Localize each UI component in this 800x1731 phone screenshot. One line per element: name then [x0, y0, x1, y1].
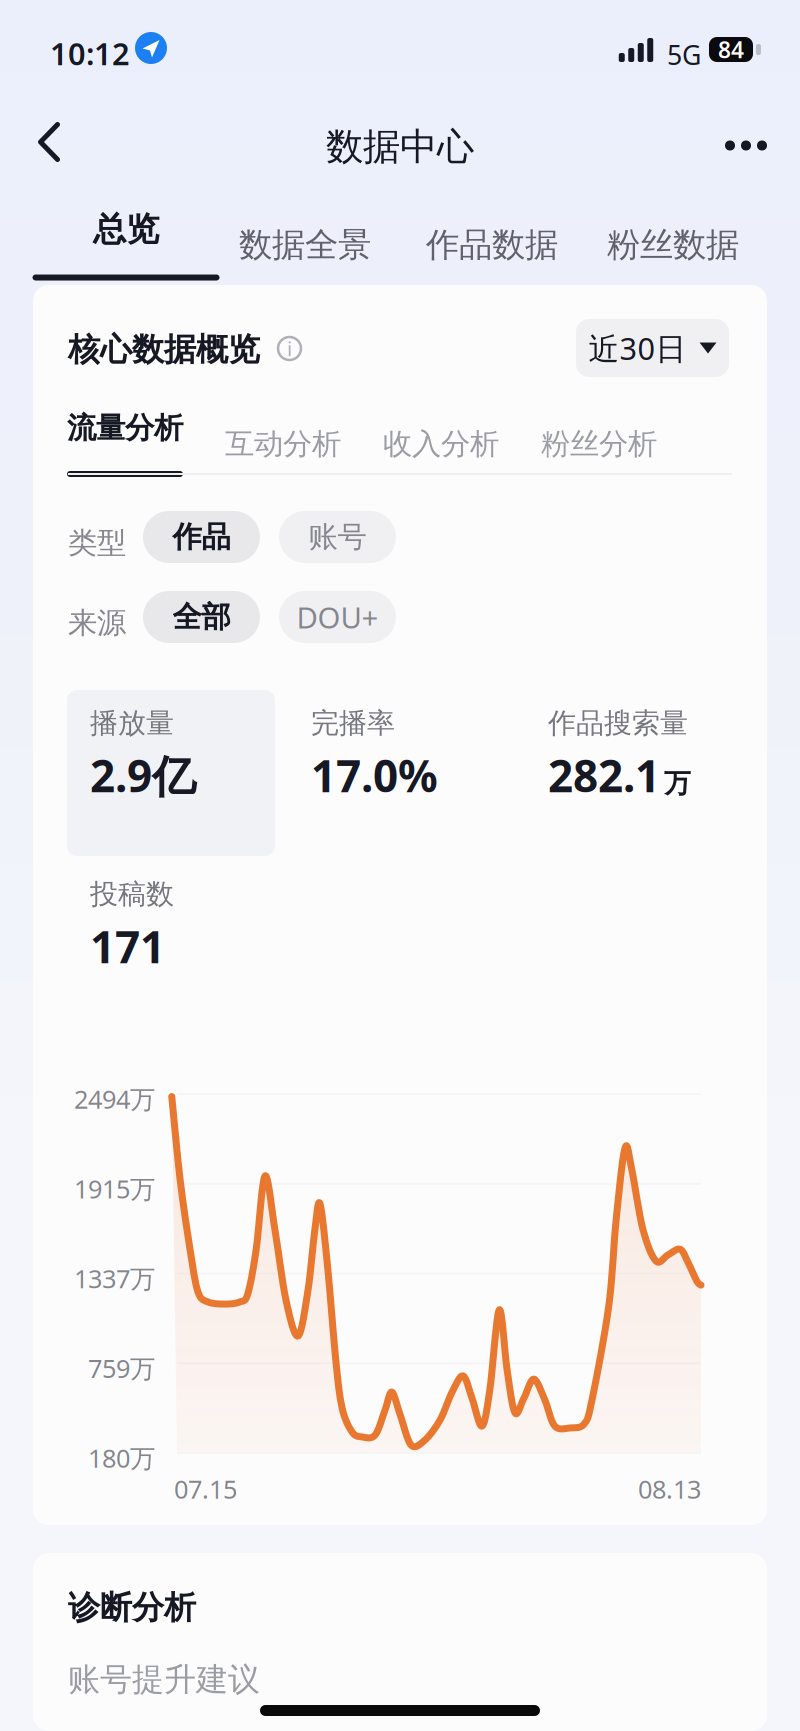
button[interactable]: DOU+ [279, 591, 396, 643]
staticText: 来源 [68, 605, 126, 641]
button[interactable]: 收入分析 [383, 406, 499, 482]
button[interactable]: 近30日 [576, 319, 729, 377]
staticText: 全部 [172, 599, 230, 635]
button[interactable]: 粉丝分析 [541, 406, 657, 482]
staticText: 核心数据概览 [68, 330, 260, 369]
button[interactable]: 作品数据 [397, 200, 587, 290]
staticText: 1337万 [74, 1261, 155, 1295]
staticText: 完播率 [311, 706, 395, 740]
button[interactable]: 互动分析 [225, 406, 341, 482]
staticText: 1915万 [74, 1172, 155, 1205]
staticText: 互动分析 [225, 426, 341, 462]
button[interactable]: 账号 [279, 511, 396, 563]
staticText: 2.9亿 [90, 746, 196, 804]
staticText: 180万 [88, 1441, 155, 1475]
staticText: 17.0% [311, 746, 438, 804]
staticText: 粉丝数据 [607, 224, 739, 265]
button[interactable]: 粉丝数据 [578, 200, 768, 290]
button[interactable]: 流量分析 [67, 406, 183, 482]
staticText: 数据中心 [326, 124, 474, 170]
staticText: 07.15 [174, 1472, 237, 1506]
staticText: 类型 [68, 525, 126, 561]
button[interactable]: Back [10, 96, 88, 188]
staticText: 5G [667, 37, 701, 72]
staticText: 数据全景 [239, 224, 371, 265]
staticText: 作品 [172, 519, 230, 555]
staticText: 诊断分析 [68, 1588, 196, 1627]
staticText: 171 [90, 917, 165, 975]
button[interactable]: More options [696, 108, 796, 183]
staticText: 作品数据 [426, 224, 558, 265]
staticText: 10:12 [50, 33, 130, 74]
staticText: 播放量 [90, 706, 174, 740]
staticText: 作品搜索量 [548, 706, 688, 740]
staticText: i [287, 335, 292, 362]
staticText: 万 [664, 767, 691, 800]
staticText: 2494万 [74, 1082, 155, 1116]
staticText: DOU+ [296, 597, 378, 636]
button[interactable]: 全部 [143, 591, 260, 643]
button[interactable]: 作品 [143, 511, 260, 563]
staticText: 投稿数 [90, 877, 174, 911]
staticText: 粉丝分析 [541, 426, 657, 462]
staticText: 总览 [93, 209, 159, 250]
staticText: 账号提升建议 [68, 1660, 260, 1699]
button[interactable]: 总览 [31, 200, 221, 290]
staticText: 08.13 [638, 1472, 701, 1506]
button[interactable]: 数据全景 [210, 200, 400, 290]
staticText: 282.1 [548, 746, 660, 804]
staticText: 84 [718, 34, 744, 64]
staticText: 账号 [308, 519, 366, 555]
staticText: 近30日 [588, 328, 686, 368]
staticText: 流量分析 [67, 410, 183, 446]
staticText: 收入分析 [383, 426, 499, 462]
staticText: 759万 [88, 1351, 155, 1385]
